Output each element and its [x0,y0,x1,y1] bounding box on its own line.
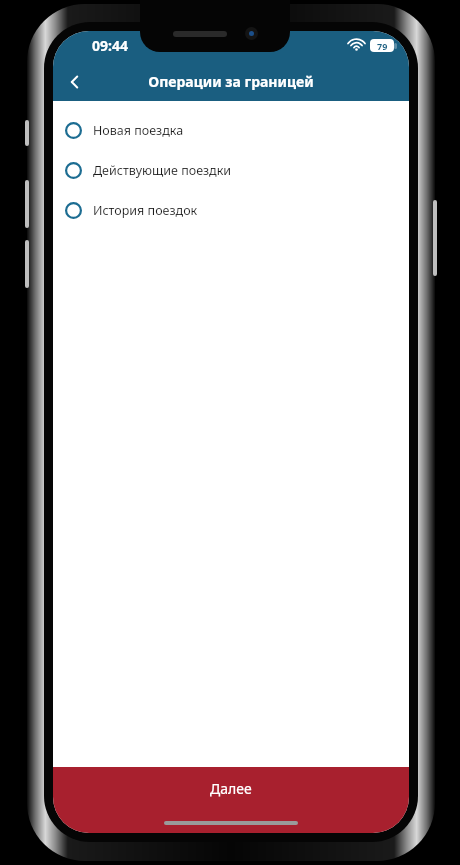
staticText: Операции за границей [148,72,314,91]
staticText: Действующие поездки [93,162,232,179]
staticText: История поездок [93,202,198,219]
button[interactable]: Назад [53,62,97,101]
staticText: Новая поездка [93,122,184,139]
staticText: Далее [210,779,252,798]
button[interactable]: Действующие поездки [53,150,409,190]
staticText: 79 [377,40,388,52]
staticText: 09:44 [92,36,128,55]
button[interactable]: Новая поездка [53,110,409,150]
button[interactable]: Далее [53,767,409,833]
button[interactable]: История поездок [53,190,409,230]
